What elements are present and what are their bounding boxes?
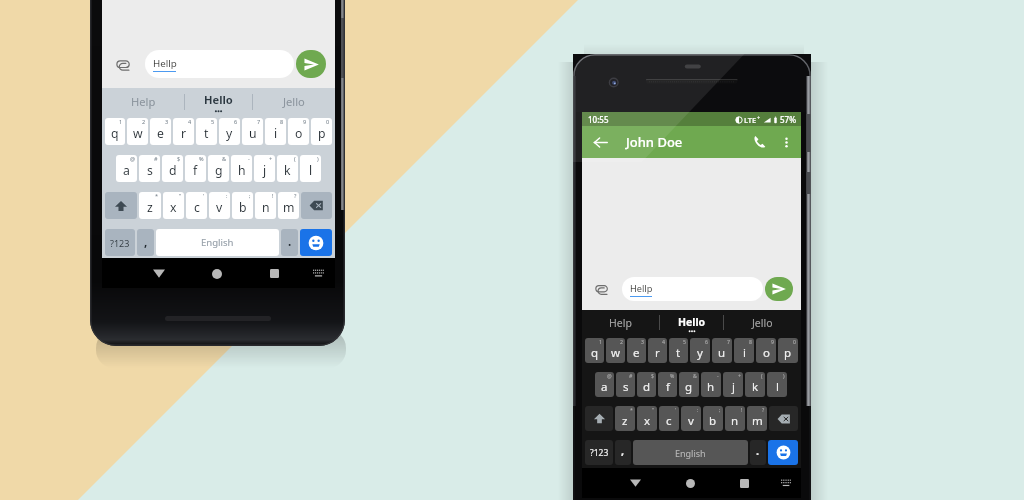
button[interactable]: m xyxy=(747,406,767,431)
button[interactable]: f xyxy=(658,372,677,397)
button[interactable]: Hello xyxy=(660,310,723,335)
button[interactable]: Send xyxy=(296,50,326,78)
button[interactable]: k xyxy=(745,372,765,397)
button[interactable]: d xyxy=(162,155,183,182)
button[interactable]: u xyxy=(712,338,732,363)
staticText: k xyxy=(284,162,291,179)
button[interactable]: English xyxy=(633,440,748,465)
button[interactable]: Switch keyboard xyxy=(307,262,330,285)
button[interactable]: b xyxy=(703,406,723,431)
button[interactable]: k xyxy=(277,155,298,182)
button[interactable]: Home xyxy=(679,472,701,494)
button[interactable]: Recent apps xyxy=(733,472,755,494)
button[interactable]: v xyxy=(681,406,701,431)
button[interactable]: j xyxy=(723,372,743,397)
button[interactable]: Jello xyxy=(253,88,335,115)
button[interactable]: Hellp xyxy=(145,50,294,78)
button[interactable]: Home xyxy=(205,262,228,285)
button[interactable]: x xyxy=(163,192,184,219)
button[interactable]: j xyxy=(254,155,275,182)
button[interactable]: . xyxy=(281,229,298,256)
button[interactable]: r xyxy=(648,338,667,363)
staticText: 1 xyxy=(119,118,123,126)
button[interactable]: a xyxy=(116,155,137,182)
button[interactable]: z xyxy=(615,406,635,431)
staticText: ? xyxy=(762,406,765,413)
button[interactable]: Shift xyxy=(585,406,613,431)
button[interactable]: o xyxy=(288,118,309,145)
button[interactable]: Back xyxy=(624,472,646,494)
button[interactable]: d xyxy=(637,372,656,397)
button[interactable]: q xyxy=(105,118,125,145)
staticText: f xyxy=(666,379,670,395)
button[interactable]: Recent apps xyxy=(263,262,286,285)
button[interactable]: c xyxy=(186,192,207,219)
button[interactable]: b xyxy=(232,192,253,219)
button[interactable]: , xyxy=(615,440,631,465)
button[interactable]: More options xyxy=(775,131,797,153)
button[interactable]: t xyxy=(196,118,217,145)
button[interactable]: Attach xyxy=(582,277,622,301)
button[interactable]: v xyxy=(209,192,230,219)
button[interactable]: Back xyxy=(147,262,170,285)
button[interactable]: o xyxy=(756,338,776,363)
button[interactable]: s xyxy=(616,372,635,397)
button[interactable]: Help xyxy=(102,88,184,115)
button[interactable]: h xyxy=(231,155,252,182)
button[interactable]: Help xyxy=(582,310,659,335)
button[interactable]: h xyxy=(701,372,721,397)
button[interactable]: ?123 xyxy=(105,229,135,256)
button[interactable]: Send xyxy=(765,277,793,301)
button[interactable]: r xyxy=(173,118,194,145)
button[interactable]: Switch keyboard xyxy=(775,472,797,494)
button[interactable]: g xyxy=(679,372,699,397)
button[interactable]: y xyxy=(690,338,710,363)
button[interactable]: p xyxy=(778,338,798,363)
button[interactable]: q xyxy=(585,338,604,363)
button[interactable]: s xyxy=(139,155,160,182)
staticText: - xyxy=(717,372,719,379)
button[interactable]: t xyxy=(669,338,688,363)
button[interactable]: x xyxy=(637,406,657,431)
button[interactable]: i xyxy=(265,118,286,145)
button[interactable]: Attach xyxy=(102,50,145,78)
button[interactable]: Emoji xyxy=(300,229,332,256)
button[interactable]: ?123 xyxy=(585,440,613,465)
button[interactable]: w xyxy=(606,338,625,363)
button[interactable]: Jello xyxy=(724,310,801,335)
button[interactable]: i xyxy=(734,338,754,363)
button[interactable]: English xyxy=(156,229,279,256)
button[interactable]: p xyxy=(311,118,332,145)
button[interactable]: c xyxy=(659,406,679,431)
staticText: % xyxy=(670,372,675,379)
staticText: k xyxy=(752,379,759,395)
staticText: e xyxy=(157,125,164,142)
button[interactable]: a xyxy=(595,372,614,397)
button[interactable]: y xyxy=(219,118,240,145)
button[interactable]: l xyxy=(767,372,787,397)
button[interactable]: w xyxy=(127,118,148,145)
button[interactable]: Emoji xyxy=(768,440,798,465)
button[interactable]: Hello xyxy=(185,88,252,115)
button[interactable]: f xyxy=(185,155,206,182)
button[interactable]: u xyxy=(242,118,263,145)
staticText: & xyxy=(222,155,227,163)
button[interactable]: Backspace xyxy=(301,192,332,219)
button[interactable]: . xyxy=(750,440,766,465)
button[interactable]: Hellp xyxy=(622,277,763,301)
button[interactable]: e xyxy=(627,338,646,363)
button[interactable]: g xyxy=(208,155,229,182)
staticText: g xyxy=(685,379,693,395)
button[interactable]: l xyxy=(300,155,321,182)
button[interactable]: m xyxy=(278,192,299,219)
button[interactable]: Call xyxy=(748,130,772,154)
button[interactable]: z xyxy=(139,192,161,219)
button[interactable]: Back xyxy=(587,129,613,155)
button[interactable]: Shift xyxy=(105,192,137,219)
button[interactable]: e xyxy=(150,118,171,145)
button[interactable]: , xyxy=(137,229,154,256)
button[interactable]: Backspace xyxy=(769,406,798,431)
button[interactable]: n xyxy=(725,406,745,431)
staticText: ' xyxy=(675,406,677,413)
button[interactable]: n xyxy=(255,192,276,219)
